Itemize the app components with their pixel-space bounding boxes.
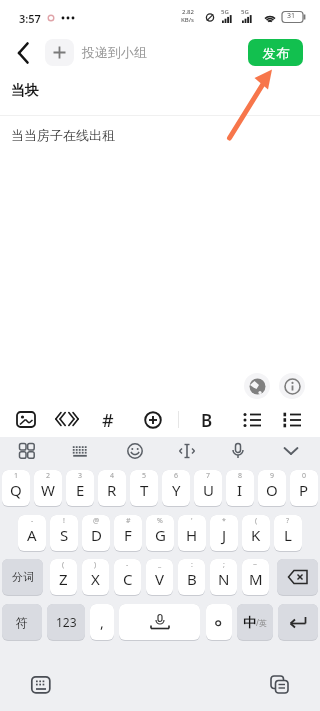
staticText: 0: [302, 471, 307, 480]
staticText: W: [41, 480, 55, 500]
staticText: -: [31, 516, 34, 525]
button[interactable]: #: [98, 406, 118, 434]
button[interactable]: [126, 442, 144, 460]
button[interactable]: [98, 470, 126, 507]
staticText: *: [222, 516, 226, 525]
staticText: V: [155, 569, 165, 589]
button[interactable]: [242, 515, 270, 552]
button[interactable]: [16, 409, 37, 430]
button[interactable]: [277, 559, 318, 596]
button[interactable]: [18, 442, 36, 460]
button[interactable]: [130, 470, 158, 507]
button[interactable]: [2, 470, 30, 507]
staticText: G: [155, 525, 166, 545]
button[interactable]: [45, 39, 74, 66]
button[interactable]: 符: [2, 604, 42, 641]
button[interactable]: B: [198, 406, 216, 434]
button[interactable]: [82, 559, 109, 596]
button[interactable]: [114, 559, 141, 596]
staticText: R: [107, 480, 117, 500]
staticText: 分词: [12, 570, 34, 584]
staticText: O: [266, 480, 278, 500]
staticText: C: [123, 569, 133, 589]
staticText: 当块: [11, 82, 39, 100]
staticText: B: [201, 409, 213, 432]
button[interactable]: [50, 515, 78, 552]
staticText: P: [299, 480, 309, 500]
button[interactable]: [119, 604, 200, 641]
staticText: 发布: [262, 45, 290, 61]
staticText: X: [91, 569, 100, 589]
staticText: A: [27, 525, 37, 545]
staticText: 中: [243, 614, 256, 630]
staticText: M: [249, 569, 263, 589]
button[interactable]: [71, 442, 89, 460]
button[interactable]: [270, 675, 290, 695]
staticText: 1: [14, 471, 19, 480]
button[interactable]: [82, 515, 110, 552]
button[interactable]: [10, 40, 38, 66]
staticText: @: [93, 516, 100, 525]
staticText: 31: [287, 11, 296, 21]
button[interactable]: [31, 675, 51, 695]
button[interactable]: 123: [47, 604, 85, 641]
button[interactable]: [178, 442, 196, 460]
button[interactable]: [226, 470, 254, 507]
button[interactable]: [242, 559, 269, 596]
staticText: N: [218, 569, 230, 589]
button[interactable]: [194, 470, 222, 507]
button[interactable]: [274, 515, 302, 552]
staticText: 2.82: [182, 8, 194, 16]
button[interactable]: [258, 470, 286, 507]
staticText: %: [157, 516, 163, 525]
staticText: 4: [110, 471, 115, 480]
button[interactable]: [279, 373, 305, 399]
staticText: 3:57: [19, 11, 41, 26]
button[interactable]: [290, 470, 318, 507]
staticText: D: [91, 525, 102, 545]
staticText: 当当房子在线出租: [11, 127, 115, 143]
staticText: F: [124, 525, 132, 545]
staticText: 投递到小组: [82, 44, 147, 60]
button[interactable]: [34, 470, 62, 507]
staticText: 9: [270, 471, 275, 480]
button[interactable]: [178, 559, 205, 596]
button[interactable]: [144, 411, 162, 429]
staticText: !: [63, 516, 65, 525]
button[interactable]: [283, 411, 302, 430]
staticText: ): [94, 560, 97, 569]
button[interactable]: 中: [237, 604, 273, 641]
button[interactable]: [50, 559, 77, 596]
staticText: 2: [46, 471, 51, 480]
button[interactable]: [146, 515, 174, 552]
button[interactable]: [229, 442, 247, 460]
staticText: J: [222, 525, 227, 545]
staticText: T: [140, 480, 149, 500]
button[interactable]: [66, 470, 94, 507]
button[interactable]: [210, 559, 237, 596]
button[interactable]: [146, 559, 173, 596]
button[interactable]: [206, 604, 232, 641]
button[interactable]: [210, 515, 238, 552]
staticText: H: [186, 525, 198, 545]
button[interactable]: [162, 470, 190, 507]
button[interactable]: ,: [90, 604, 114, 641]
button[interactable]: [178, 515, 206, 552]
staticText: #: [126, 516, 131, 525]
staticText: U: [203, 480, 214, 500]
button[interactable]: 发布: [248, 39, 303, 66]
button[interactable]: [55, 409, 78, 430]
button[interactable]: [114, 515, 142, 552]
staticText: 5: [142, 471, 147, 480]
staticText: L: [284, 525, 292, 545]
button[interactable]: [244, 373, 270, 399]
staticText: Q: [10, 480, 22, 500]
button[interactable]: [243, 411, 262, 430]
button[interactable]: [278, 604, 318, 641]
staticText: Y: [172, 480, 181, 500]
staticText: Z: [59, 569, 68, 589]
button[interactable]: [282, 444, 300, 458]
button[interactable]: 分词: [2, 559, 43, 596]
staticText: ?: [286, 516, 290, 525]
button[interactable]: [18, 515, 46, 552]
